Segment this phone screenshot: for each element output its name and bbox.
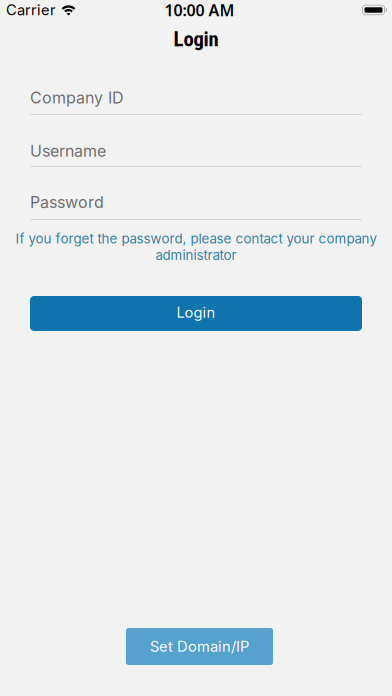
staticText: 10:00 AM — [164, 0, 234, 21]
button[interactable] — [30, 138, 362, 168]
staticText: administrator — [155, 247, 236, 263]
staticText: Username — [30, 142, 106, 160]
staticText: Company ID — [30, 88, 124, 107]
staticText: Set Domain/IP — [150, 638, 249, 655]
staticText: Login — [173, 27, 218, 51]
button[interactable]: Set Domain/IP — [126, 628, 273, 665]
staticText: Login — [176, 304, 215, 321]
button[interactable] — [30, 84, 362, 114]
staticText: If you forget the password, please conta… — [15, 231, 376, 246]
staticText: Carrier — [6, 1, 56, 19]
button[interactable] — [30, 189, 362, 219]
staticText: Password — [30, 193, 104, 212]
button[interactable]: Login — [30, 296, 362, 331]
